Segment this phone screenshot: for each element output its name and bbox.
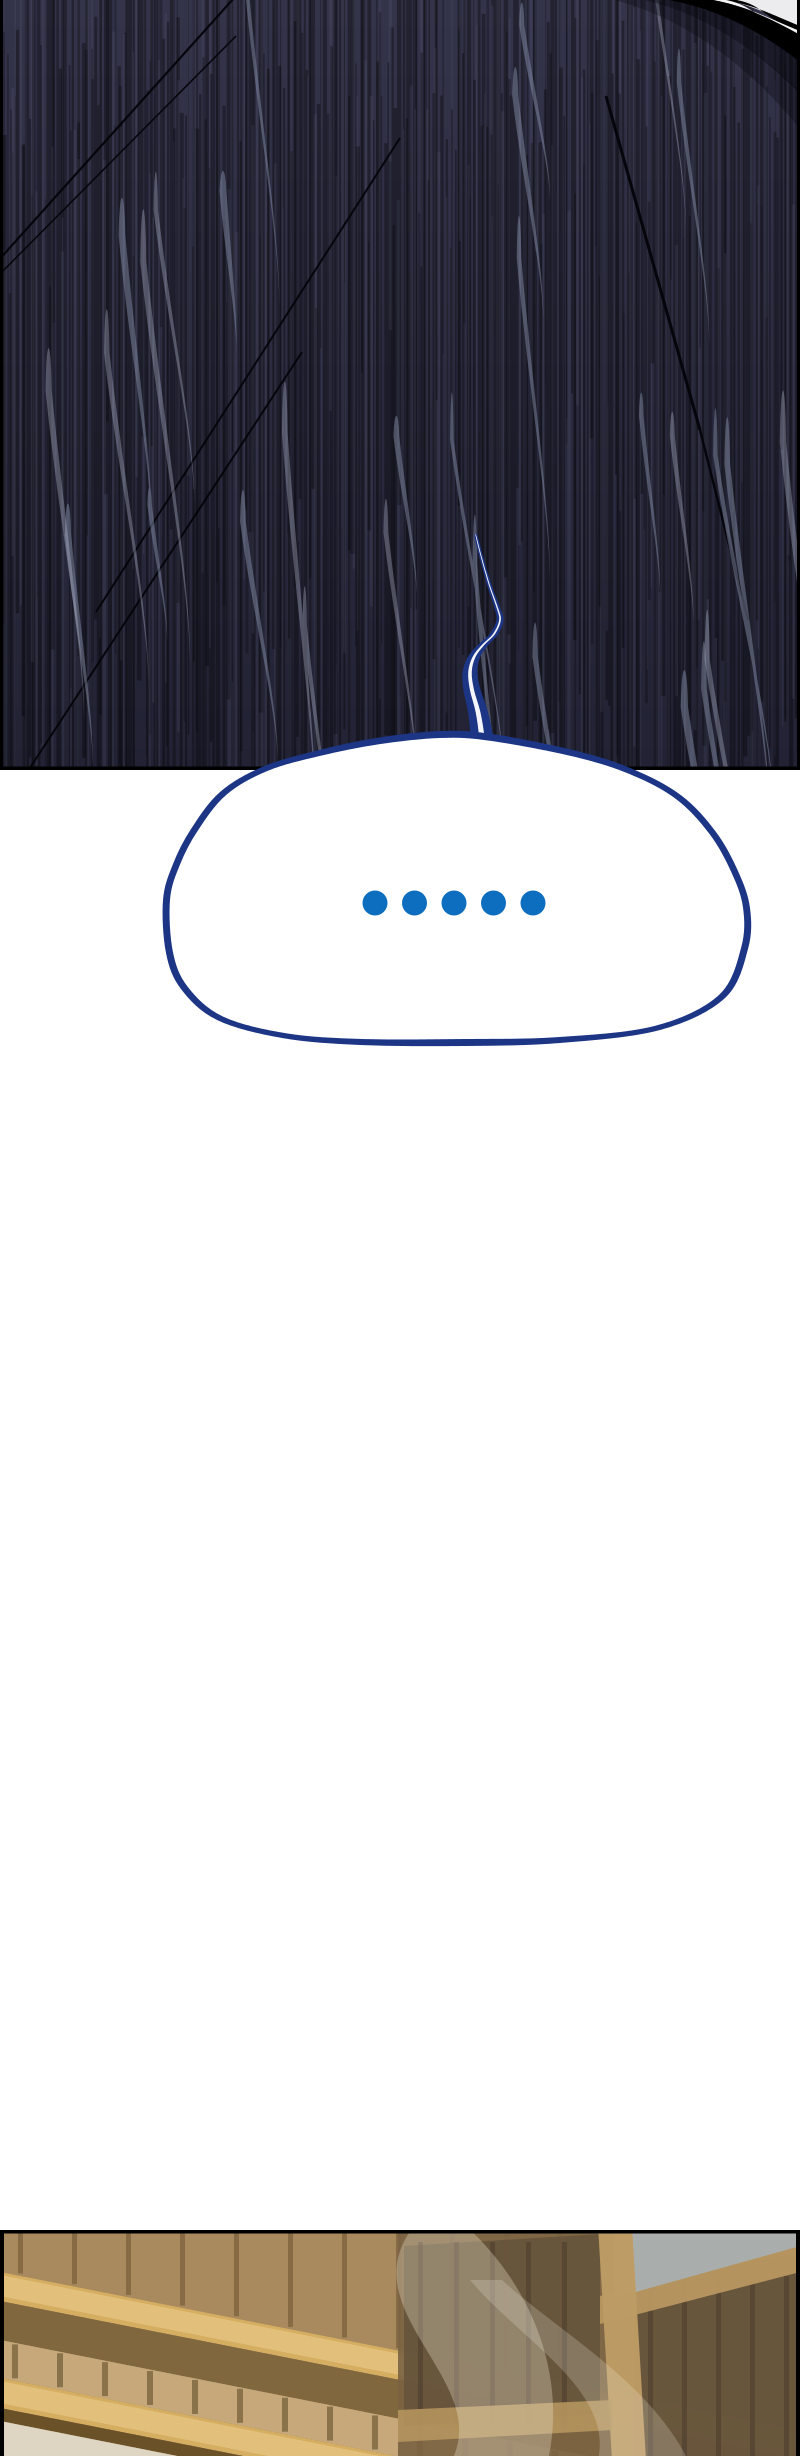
button[interactable]: Episode page <box>0 0 800 2456</box>
